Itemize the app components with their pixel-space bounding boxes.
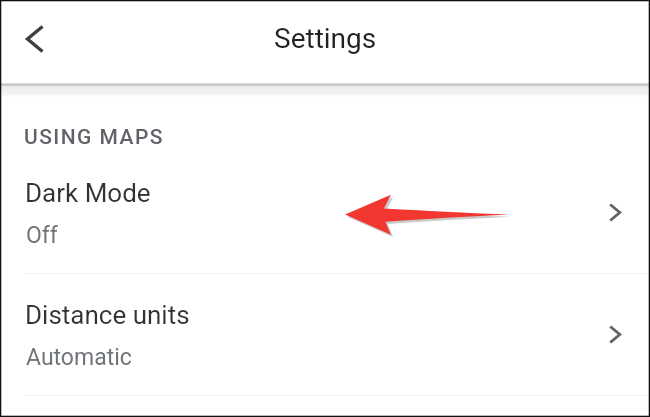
staticText: Automatic [26,344,132,371]
staticText: Distance units [25,300,190,330]
button[interactable]: Distance units [0,274,650,396]
staticText: Off [26,222,58,249]
button[interactable]: Back [10,18,58,66]
staticText: USING MAPS [24,125,164,150]
staticText: Settings [274,22,377,55]
button[interactable]: Dark Mode [0,152,650,274]
staticText: Dark Mode [25,178,151,208]
